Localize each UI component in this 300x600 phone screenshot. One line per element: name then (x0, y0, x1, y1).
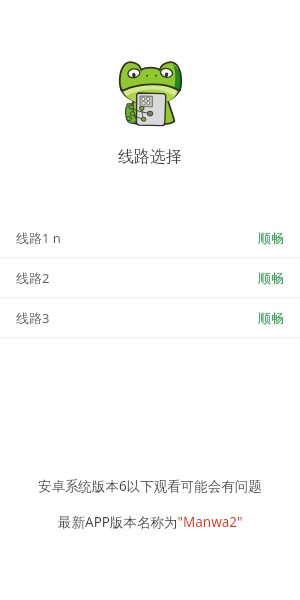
staticText: 线路1 n (16, 229, 61, 247)
button[interactable]: 线路2 (0, 258, 300, 298)
button[interactable]: 线路1 n (0, 218, 300, 258)
staticText: 线路2 (16, 269, 50, 287)
staticText: 线路选择 (118, 147, 182, 167)
staticText: 线路3 (16, 309, 50, 327)
staticText: 安卓系统版本6以下观看可能会有问题 (38, 477, 262, 495)
staticText: 顺畅 (258, 270, 284, 286)
staticText: 顺畅 (258, 230, 284, 246)
staticText: 顺畅 (258, 310, 284, 326)
button[interactable]: 线路3 (0, 298, 300, 338)
staticText: 最新APP版本名称为"Manwa2" (58, 513, 243, 531)
